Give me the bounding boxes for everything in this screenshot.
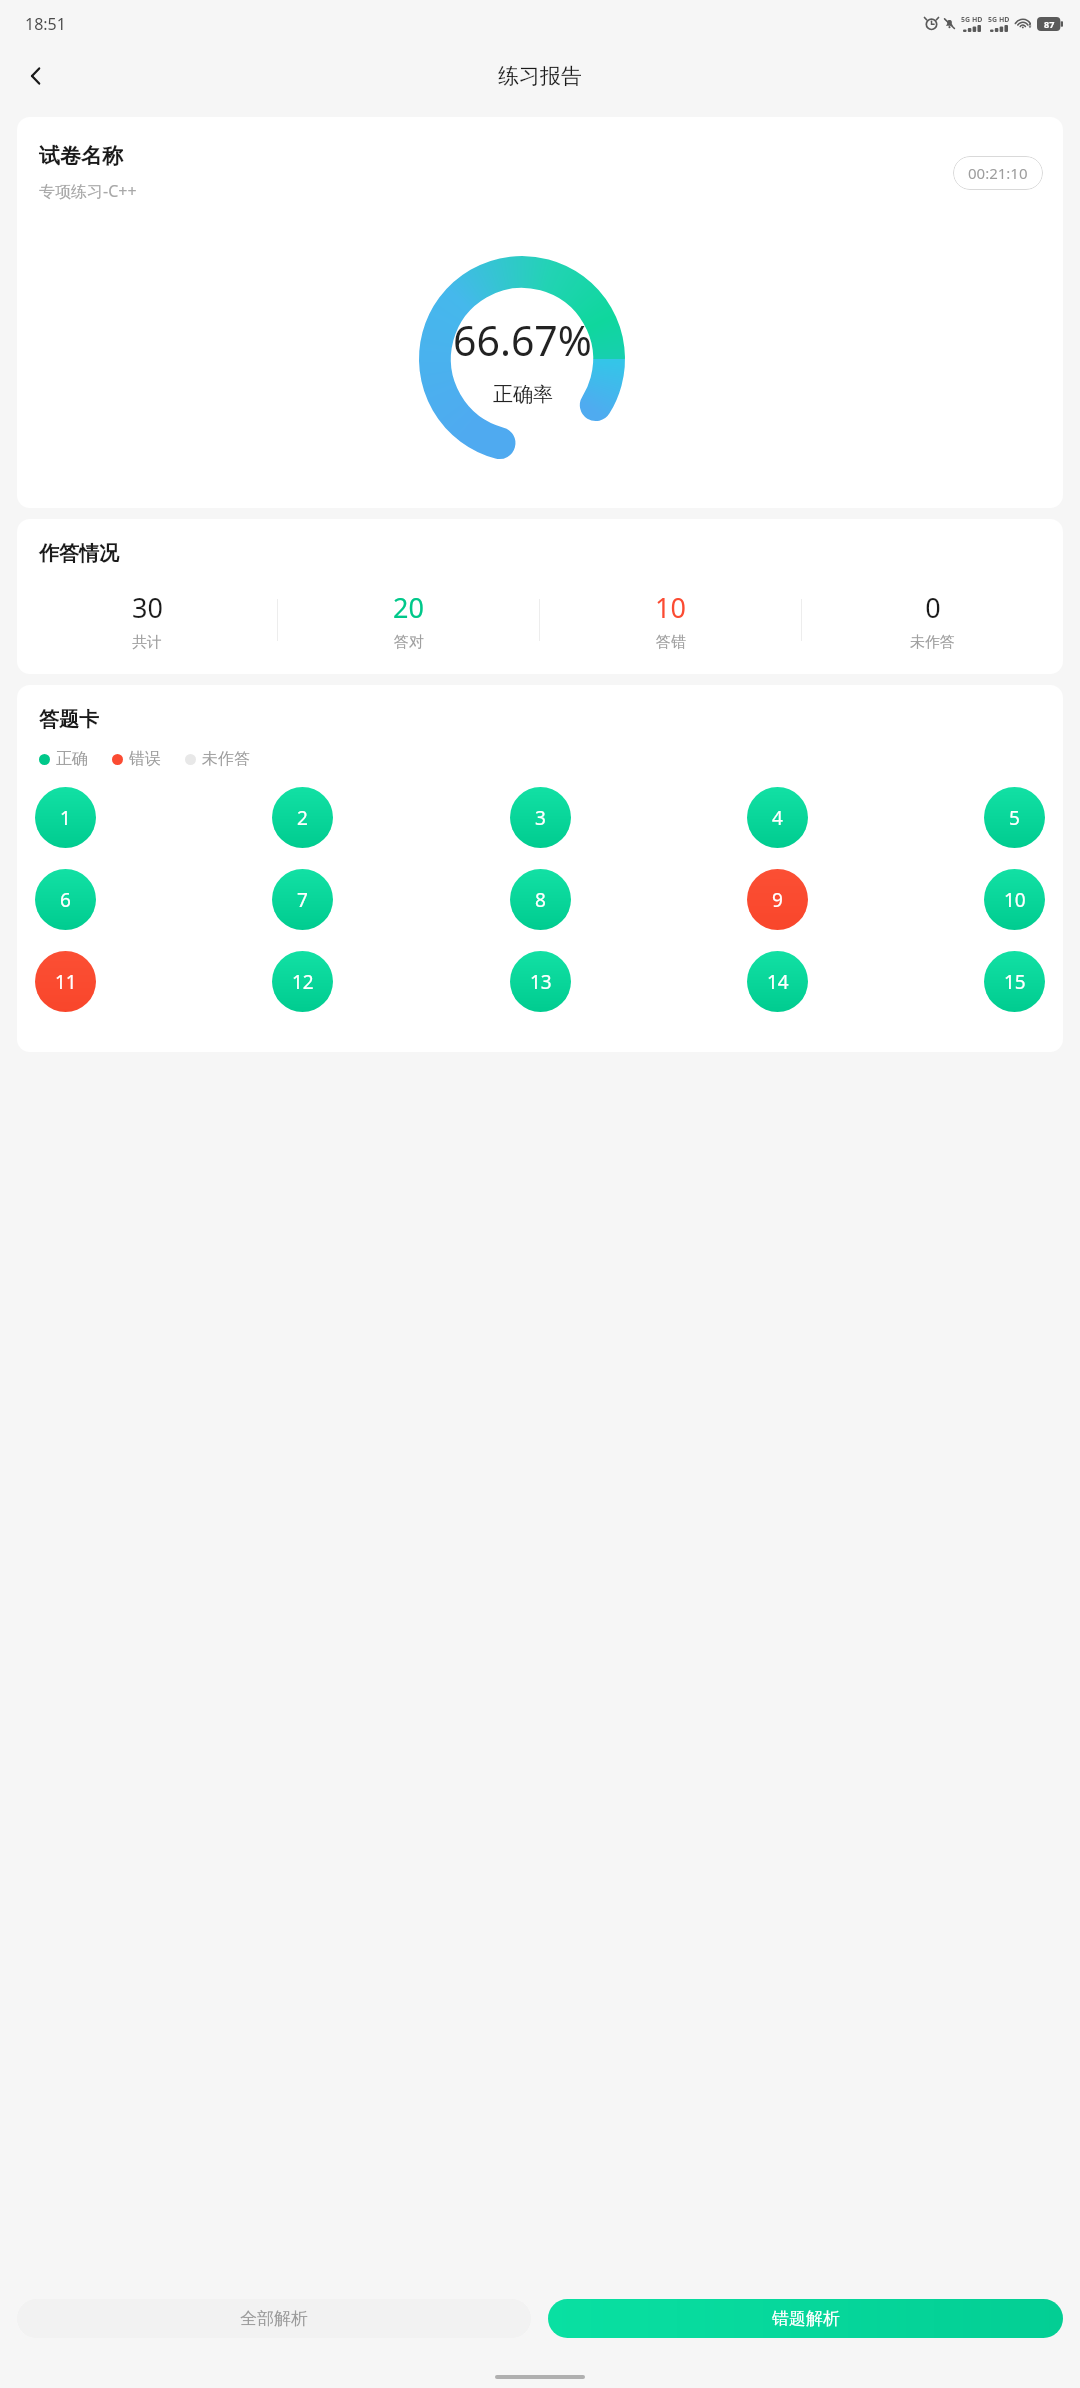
staticText: 15 — [1004, 969, 1026, 995]
staticText: 作答情况 — [39, 541, 119, 566]
staticText: 8 — [535, 887, 546, 913]
staticText: 5 — [1009, 805, 1020, 831]
staticText: 共计 — [132, 633, 162, 652]
staticText: 11 — [55, 969, 77, 995]
staticText: 20 — [393, 589, 424, 626]
button[interactable]: 10 — [540, 589, 801, 652]
button[interactable]: 4 — [747, 787, 808, 848]
staticText: 87 — [1044, 18, 1055, 30]
button[interactable]: Back — [14, 54, 58, 98]
staticText: 30 — [132, 589, 163, 626]
staticText: 专项练习-C++ — [39, 180, 137, 202]
staticText: 错题解析 — [772, 2308, 840, 2329]
button[interactable]: 12 — [272, 951, 333, 1012]
staticText: 未作答 — [910, 633, 955, 652]
staticText: 正确 — [56, 749, 88, 769]
staticText: 全部解析 — [240, 2308, 308, 2329]
staticText: 练习报告 — [498, 63, 582, 89]
staticText: 9 — [772, 887, 783, 913]
staticText: 18:51 — [25, 13, 66, 35]
staticText: 答题卡 — [39, 707, 99, 732]
staticText: 错误 — [129, 749, 161, 769]
button[interactable]: 1 — [35, 787, 96, 848]
button[interactable]: 14 — [747, 951, 808, 1012]
staticText: 答错 — [656, 633, 686, 652]
button[interactable]: 5 — [984, 787, 1045, 848]
staticText: 7 — [297, 887, 308, 913]
staticText: 12 — [292, 969, 314, 995]
staticText: 3 — [535, 805, 546, 831]
staticText: 14 — [767, 969, 789, 995]
button[interactable]: 全部解析 — [17, 2299, 531, 2338]
button[interactable]: 20 — [278, 589, 539, 652]
staticText: 2 — [297, 805, 308, 831]
staticText: 66.67% — [453, 312, 592, 368]
staticText: 5G HD — [961, 15, 983, 25]
staticText: 5G HD — [988, 15, 1010, 25]
button[interactable]: 13 — [510, 951, 571, 1012]
button[interactable]: 15 — [984, 951, 1045, 1012]
button[interactable]: 30 — [17, 589, 277, 652]
button[interactable]: 11 — [35, 951, 96, 1012]
staticText: 10 — [1004, 887, 1026, 913]
button[interactable]: 3 — [510, 787, 571, 848]
staticText: 4 — [772, 805, 783, 831]
staticText: 试卷名称 — [39, 143, 123, 169]
staticText: 10 — [655, 589, 686, 626]
staticText: 正确率 — [493, 382, 553, 407]
staticText: 1 — [60, 805, 71, 831]
button[interactable]: 7 — [272, 869, 333, 930]
button[interactable]: 0 — [802, 589, 1063, 652]
button[interactable]: 6 — [35, 869, 96, 930]
staticText: 13 — [530, 969, 552, 995]
staticText: 6 — [60, 887, 71, 913]
staticText: 0 — [925, 589, 941, 626]
staticText: 00:21:10 — [968, 163, 1028, 183]
button[interactable]: 2 — [272, 787, 333, 848]
button[interactable]: 8 — [510, 869, 571, 930]
button[interactable]: 10 — [984, 869, 1045, 930]
staticText: 未作答 — [202, 749, 250, 769]
button[interactable]: 9 — [747, 869, 808, 930]
staticText: 答对 — [394, 633, 424, 652]
button[interactable]: 错题解析 — [548, 2299, 1063, 2338]
